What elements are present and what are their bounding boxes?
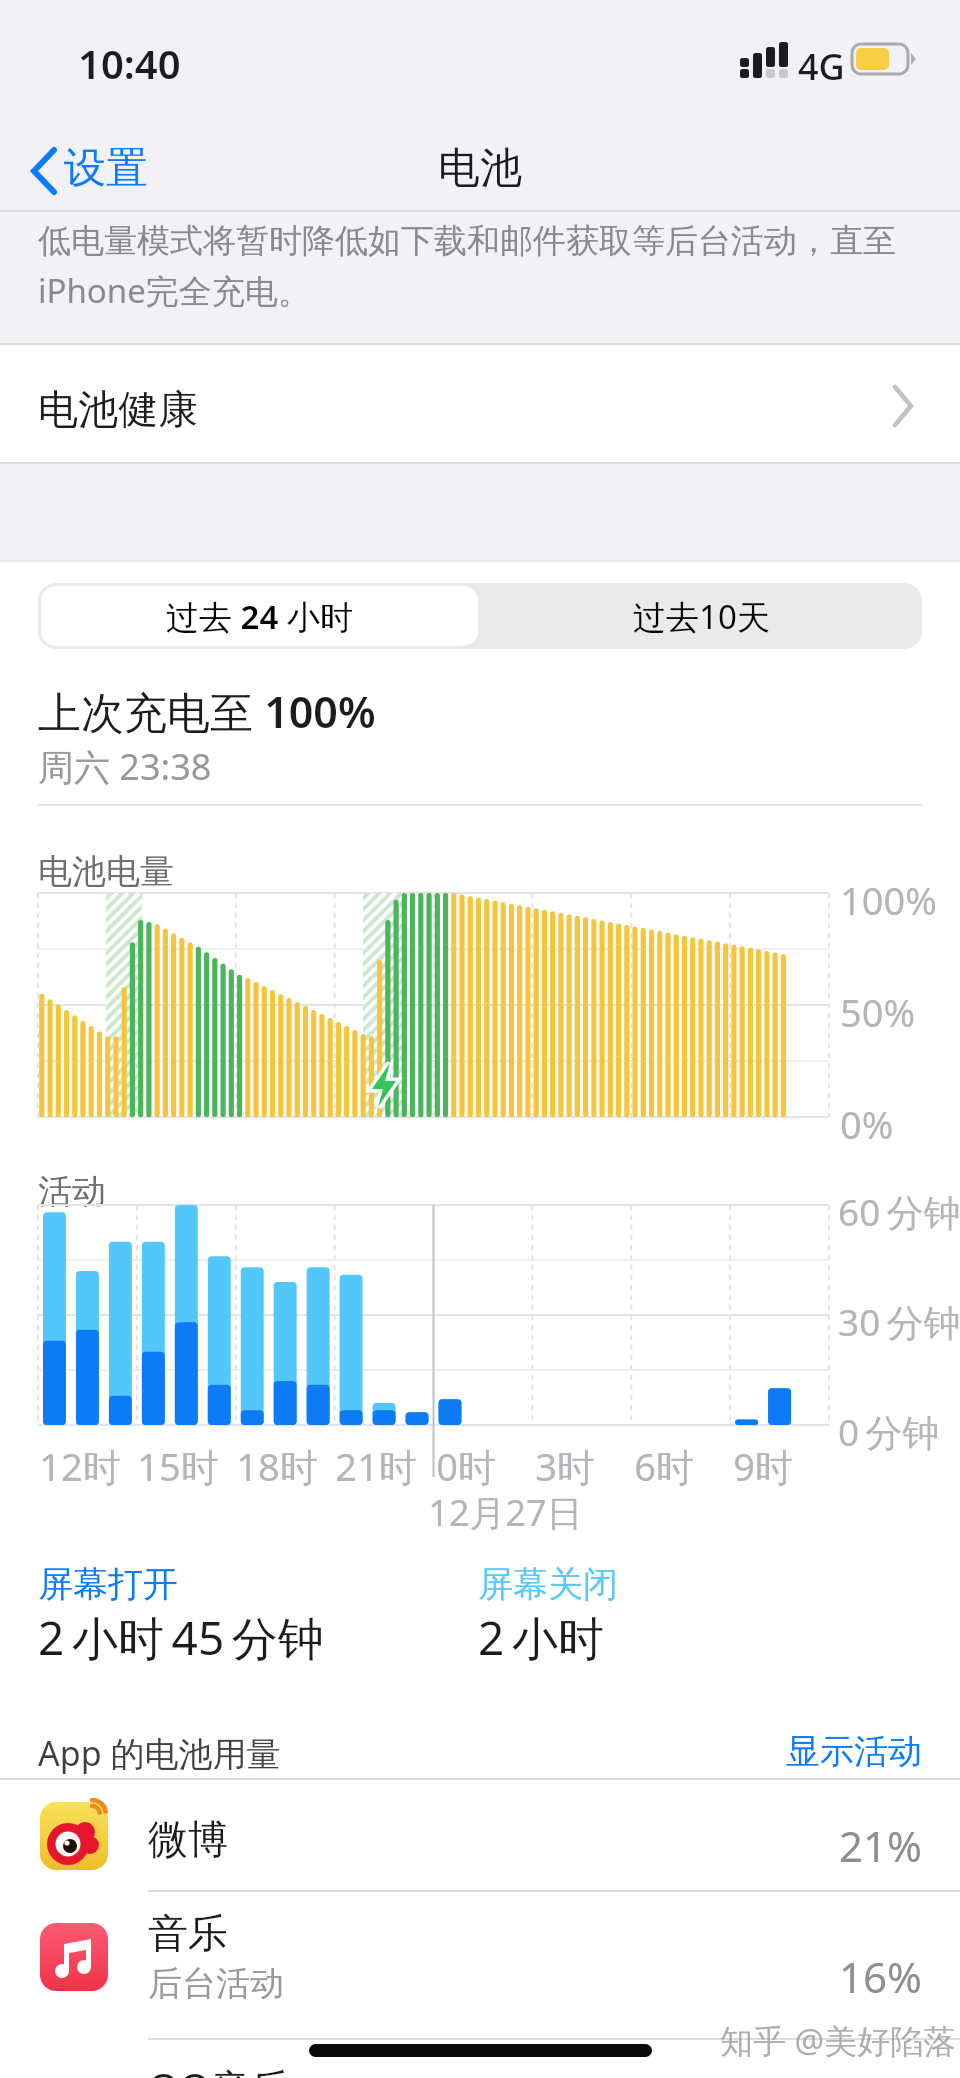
staticText: 21% xyxy=(839,1817,922,1874)
staticText: 30 分钟 xyxy=(838,1296,960,1347)
staticText: 50% xyxy=(840,986,916,1038)
button[interactable]: 微博 xyxy=(0,1779,960,1890)
staticText: 音乐 xyxy=(148,1908,228,1958)
staticText: 3时 xyxy=(535,1440,595,1492)
staticText: 显示活动 xyxy=(786,1730,922,1773)
staticText: 21时 xyxy=(335,1440,417,1492)
staticText: 屏幕打开 xyxy=(38,1562,178,1606)
staticText: 电池 xyxy=(438,142,522,195)
staticText: 后台活动 xyxy=(148,1962,284,2005)
staticText: 15时 xyxy=(137,1440,219,1492)
staticText: 60 分钟 xyxy=(838,1186,960,1237)
staticText: 6时 xyxy=(634,1440,694,1492)
staticText: 10:40 xyxy=(78,36,181,90)
staticText: 16% xyxy=(839,1948,922,2005)
staticText: QQ音乐 xyxy=(148,2060,291,2078)
staticText: 低电量模式将暂时降低如下载和邮件获取等后台活动，直至 xyxy=(38,220,896,262)
staticText: App 的电池用量 xyxy=(38,1730,281,1776)
button[interactable]: 音乐 xyxy=(0,1891,960,2038)
staticText: 4G xyxy=(798,42,845,91)
staticText: 12时 xyxy=(39,1440,121,1492)
staticText: 2 小时 xyxy=(478,1606,604,1669)
button[interactable]: 过去 24 小时 xyxy=(41,586,478,646)
button[interactable]: 显示活动 xyxy=(0,1730,922,1773)
staticText: 设置 xyxy=(64,142,148,195)
staticText: 活动 xyxy=(38,1170,106,1213)
staticText: 上次充电至 100% xyxy=(38,682,376,741)
staticText: iPhone完全充电。 xyxy=(38,268,311,313)
staticText: 微博 xyxy=(148,1814,228,1864)
staticText: 0 分钟 xyxy=(838,1406,940,1457)
staticText: 电池健康 xyxy=(38,384,198,434)
staticText: 9时 xyxy=(733,1440,793,1492)
staticText: 0时 xyxy=(436,1440,496,1492)
button[interactable]: 电池健康 xyxy=(0,343,960,462)
staticText: 过去 24 小时 xyxy=(166,594,353,639)
staticText: 屏幕关闭 xyxy=(478,1562,618,1606)
staticText: 知乎 @美好陷落 xyxy=(720,2018,957,2063)
staticText: 周六 23:38 xyxy=(38,742,212,791)
staticText: 100% xyxy=(840,874,937,926)
staticText: 0% xyxy=(840,1098,894,1150)
staticText: 18时 xyxy=(236,1440,318,1492)
button[interactable]: 过去10天 xyxy=(481,583,922,649)
staticText: 电池电量 xyxy=(38,850,174,893)
staticText: 过去10天 xyxy=(633,594,770,639)
staticText: 2 小时 45 分钟 xyxy=(38,1606,324,1669)
button[interactable]: 设置 xyxy=(64,142,148,195)
staticText: 12月27日 xyxy=(428,1488,583,1537)
button[interactable] xyxy=(30,148,60,194)
